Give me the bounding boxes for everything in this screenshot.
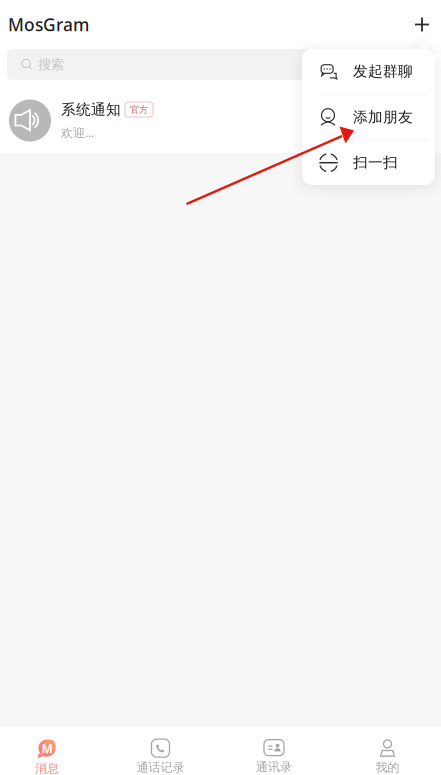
button[interactable]: 扫一扫 (302, 140, 435, 185)
button[interactable]: New chat (403, 3, 441, 45)
staticText: 搜索 (38, 56, 64, 73)
button[interactable]: 通讯录 (227, 733, 321, 775)
button[interactable]: 系统通知 (0, 88, 441, 153)
staticText: MosGram (8, 13, 89, 36)
staticText: 我的 (375, 760, 399, 775)
staticText: M (41, 741, 52, 757)
staticText: 官方 (130, 104, 148, 115)
button[interactable]: 添加朋友 (302, 94, 435, 139)
staticText: 消息 (35, 761, 59, 775)
staticText: 通话记录 (136, 760, 184, 775)
button[interactable]: 发起群聊 (302, 49, 435, 94)
staticText: 添加朋友 (353, 108, 413, 126)
button[interactable]: 通话记录 (94, 733, 227, 775)
staticText: 欢迎... (61, 124, 94, 140)
button[interactable]: 我的 (321, 733, 441, 775)
staticText: 通讯录 (256, 760, 292, 774)
button[interactable]: M (0, 733, 94, 775)
staticText: 扫一扫 (353, 154, 398, 172)
staticText: 发起群聊 (353, 62, 413, 80)
staticText: 系统通知 (61, 100, 121, 118)
